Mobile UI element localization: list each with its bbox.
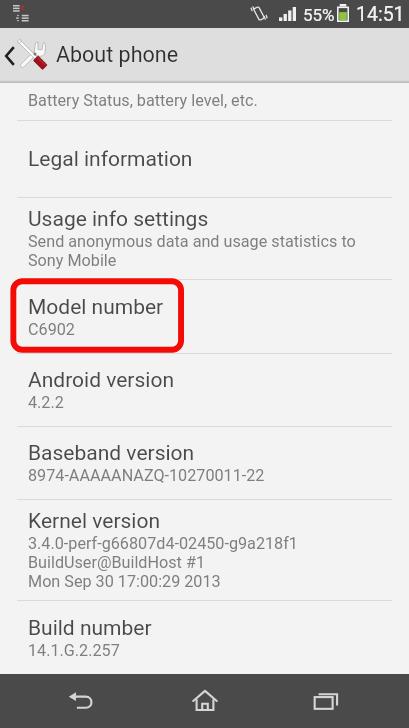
button[interactable]: Baseband version bbox=[0, 427, 409, 499]
staticText: Mon Sep 30 17:00:29 2013 bbox=[28, 572, 221, 591]
staticText: Kernel version bbox=[28, 509, 161, 534]
button[interactable]: Navigate up, About phone bbox=[0, 28, 409, 83]
staticText: About phone bbox=[56, 42, 179, 67]
staticText: 14.1.G.2.257 bbox=[28, 641, 120, 660]
staticText: Baseband version bbox=[28, 441, 195, 466]
button[interactable]: Home bbox=[165, 674, 245, 728]
staticText: Android version bbox=[28, 368, 174, 393]
button[interactable]: Recent apps bbox=[287, 674, 367, 728]
button[interactable]: Kernel version bbox=[0, 500, 409, 600]
staticText: BuildUser@BuildHost #1 bbox=[28, 553, 205, 572]
button[interactable]: Legal information bbox=[0, 121, 409, 197]
staticText: Sony Mobile bbox=[28, 251, 117, 270]
button[interactable]: Android version bbox=[0, 354, 409, 426]
staticText: Model number bbox=[28, 295, 164, 320]
button[interactable]: Usage info settings bbox=[0, 198, 409, 279]
button[interactable]: Build number bbox=[0, 601, 409, 674]
button[interactable]: Back bbox=[42, 674, 122, 728]
button[interactable]: Status bbox=[0, 83, 409, 120]
staticText: Send anonymous data and usage statistics… bbox=[28, 232, 356, 251]
staticText: 8974-AAAAANAZQ-10270011-22 bbox=[28, 466, 265, 485]
staticText: C6902 bbox=[28, 320, 75, 339]
staticText: 55% bbox=[303, 5, 335, 25]
staticText: 4.2.2 bbox=[28, 393, 64, 412]
staticText: Battery Status, battery level, etc. bbox=[28, 91, 258, 110]
staticText: 14:51 bbox=[356, 3, 405, 26]
staticText: 3.4.0-perf-g66807d4-02450-g9a218f1 bbox=[28, 534, 298, 553]
staticText: Usage info settings bbox=[28, 207, 209, 232]
button[interactable]: Model number bbox=[0, 280, 409, 353]
staticText: Build number bbox=[28, 616, 152, 641]
staticText: Legal information bbox=[28, 147, 193, 172]
